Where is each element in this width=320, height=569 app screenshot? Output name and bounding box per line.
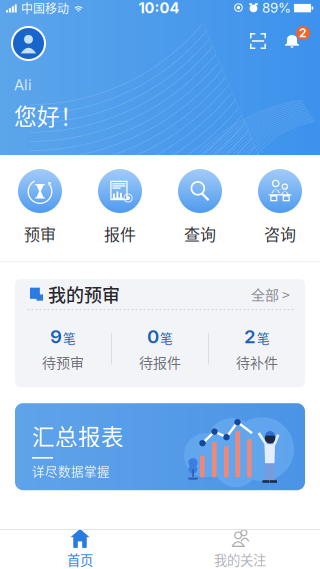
button[interactable]: 汇总报表 [0,403,320,490]
staticText: 笔 [257,329,270,347]
staticText: 笔 [160,329,173,347]
staticText: 您好！ [14,99,83,131]
button[interactable]: 预审 [0,169,80,245]
button[interactable]: 我的关注 [160,529,320,569]
button[interactable]: 查询 [160,169,240,245]
staticText: 待补件 [236,352,278,372]
button[interactable]: 扫一扫 [244,27,272,55]
staticText: 预审 [24,222,56,245]
staticText: 全部 > [251,284,290,304]
staticText: 我的预审 [48,281,120,307]
staticText: 汇总报表 [32,419,124,452]
staticText: 2 [244,325,256,348]
staticText: 中国移动 [21,0,69,17]
staticText: 我的关注 [214,550,266,569]
staticText: 详尽数据掌握 [32,462,110,480]
staticText: 待报件 [139,352,181,372]
button[interactable]: 咨询 [240,169,320,245]
staticText: 0 [147,325,159,348]
staticText: 报件 [104,222,136,245]
staticText: 待预审 [42,352,84,372]
button[interactable]: 通知 [278,27,306,55]
staticText: 9 [50,325,62,348]
staticText: 咨询 [264,222,296,245]
staticText: 2 [299,26,307,40]
staticText: 89% [262,0,291,16]
staticText: 10:04 [138,0,179,17]
button[interactable]: 报件 [80,169,160,245]
button[interactable]: 首页 [0,529,160,569]
staticText: 首页 [67,550,93,569]
button[interactable]: 全部 > [251,284,290,304]
staticText: 笔 [63,329,76,347]
staticText: Ali [14,76,32,94]
staticText: 查询 [184,222,216,245]
